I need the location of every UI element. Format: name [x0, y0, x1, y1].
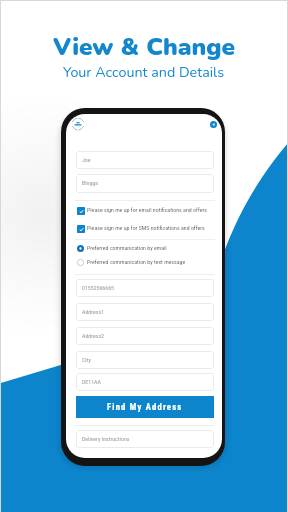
staticText: 01552566665 — [82, 285, 114, 292]
button[interactable]: Back — [210, 121, 217, 128]
staticText: Your Account and Details — [63, 63, 225, 83]
staticText: Preferred communication by text message — [87, 259, 186, 266]
staticText: Please sign me up for SMS notifications … — [87, 225, 205, 232]
button[interactable]: Bloggs — [76, 174, 214, 193]
other: The Garden logo — [71, 117, 85, 131]
button[interactable]: Delivery Instructions — [76, 430, 214, 448]
staticText: Bloggs — [82, 180, 99, 187]
staticText: Please sign me up for email notification… — [87, 207, 207, 214]
staticText: Delivery Instructions — [82, 436, 130, 443]
staticText: Address1 — [82, 309, 105, 316]
button[interactable]: Address2 — [76, 327, 214, 345]
button[interactable]: City — [76, 351, 214, 369]
staticText: Joe — [82, 157, 91, 164]
staticText: Find My Address — [107, 402, 183, 412]
button[interactable]: Please sign me up for email notification… — [77, 206, 214, 215]
button[interactable]: Find My Address — [76, 396, 214, 418]
staticText: Address2 — [82, 333, 105, 340]
button[interactable]: 01552566665 — [76, 279, 214, 297]
button[interactable]: DE11AA — [76, 373, 214, 391]
button[interactable]: Preferred communication by email — [77, 245, 214, 252]
staticText: DE11AA — [82, 379, 101, 386]
button[interactable]: Please sign me up for SMS notifications … — [77, 224, 214, 233]
staticText: Preferred communication by email — [87, 245, 167, 252]
button[interactable]: Joe — [76, 151, 214, 169]
button[interactable]: Address1 — [76, 303, 214, 321]
staticText: City — [82, 357, 91, 364]
staticText: View & Change — [53, 30, 236, 63]
button[interactable]: Preferred communication by text message — [77, 259, 214, 266]
